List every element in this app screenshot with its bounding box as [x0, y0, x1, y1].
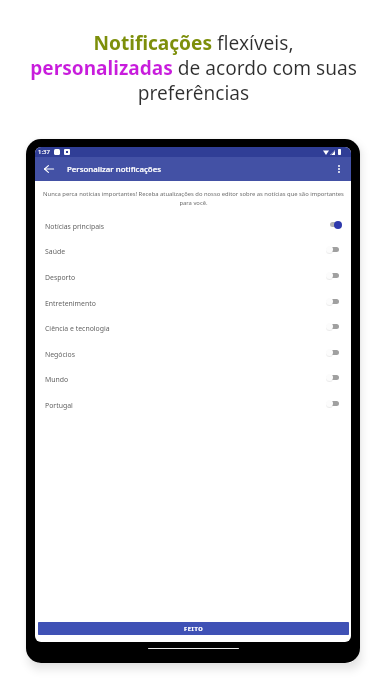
button[interactable]: Entretenimento [35, 290, 351, 316]
button[interactable]: More options [331, 161, 347, 177]
button[interactable]: Saúde [35, 238, 351, 264]
staticText: Nunca perca notícias importantes! Receba… [43, 190, 344, 207]
button[interactable]: Negócios [35, 341, 351, 367]
button[interactable]: Mundo [35, 366, 351, 392]
staticText: 1:37 [38, 148, 50, 156]
button[interactable]: Ciência e tecnologia [35, 315, 351, 341]
staticText: Ciência e tecnologia [45, 324, 110, 333]
staticText: Portugal [45, 401, 73, 410]
staticText: Saúde [45, 247, 66, 256]
button[interactable]: Notícias principais [35, 213, 351, 239]
button[interactable]: Desporto [35, 264, 351, 290]
staticText: Negócios [45, 350, 76, 359]
staticText: Desporto [45, 273, 76, 282]
button[interactable]: FEITO [38, 622, 349, 635]
staticText: Personalizar notificações [67, 164, 162, 175]
button[interactable]: Portugal [35, 392, 351, 418]
staticText: Mundo [45, 375, 69, 384]
staticText: Notificações flexíveis, personalizadas d… [30, 30, 357, 106]
staticText: Notícias principais [45, 222, 105, 231]
staticText: Entretenimento [45, 299, 96, 308]
button[interactable]: Back [41, 161, 57, 177]
staticText: FEITO [184, 625, 204, 633]
